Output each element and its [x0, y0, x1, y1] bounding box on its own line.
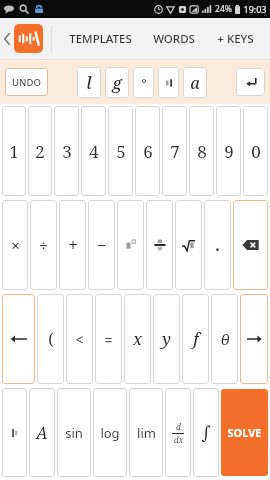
staticText: A	[36, 422, 48, 444]
button[interactable]: log	[93, 388, 127, 477]
staticText: dx	[174, 434, 183, 445]
button[interactable]: Power	[117, 200, 144, 290]
staticText: 19:03	[243, 3, 267, 15]
staticText: 0	[251, 140, 261, 163]
button[interactable]: l	[77, 67, 101, 98]
button[interactable]: 4	[81, 106, 106, 196]
button[interactable]: −	[88, 200, 115, 290]
button[interactable]: .	[204, 200, 231, 290]
button[interactable]: a	[183, 67, 207, 98]
button[interactable]: =	[95, 294, 122, 384]
staticText: −	[97, 235, 106, 255]
staticText: y	[162, 328, 171, 350]
staticText: .	[215, 234, 220, 256]
button[interactable]: x	[124, 294, 151, 384]
button[interactable]: 9	[216, 106, 241, 196]
button[interactable]: SOLVE	[221, 389, 268, 476]
staticText: log	[100, 424, 120, 442]
button[interactable]: + KEYS	[212, 20, 259, 58]
button[interactable]: 6	[135, 106, 160, 196]
staticText: ∫	[201, 422, 211, 443]
button[interactable]: 5	[108, 106, 133, 196]
button[interactable]: 8	[189, 106, 214, 196]
staticText: (	[48, 328, 54, 350]
staticText: +	[68, 234, 78, 256]
staticText: 7	[170, 140, 180, 163]
staticText: θ	[220, 329, 230, 349]
button[interactable]: 7	[162, 106, 187, 196]
staticText: ×	[11, 235, 20, 255]
button[interactable]: lim	[129, 388, 163, 477]
staticText: 3	[62, 140, 72, 163]
staticText: a	[190, 72, 200, 94]
button[interactable]: Back	[0, 18, 46, 59]
staticText: 4	[89, 140, 99, 163]
staticText: 9	[224, 140, 234, 163]
staticText: sin	[65, 424, 83, 442]
button[interactable]: 0	[243, 106, 268, 196]
button[interactable]: Integral	[193, 388, 219, 477]
button[interactable]: Enter	[236, 68, 265, 96]
staticText: 2	[35, 140, 45, 163]
button[interactable]: °	[133, 67, 154, 98]
button[interactable]: f	[182, 294, 209, 384]
staticText: l	[86, 71, 92, 94]
staticText: TEMPLATES	[69, 31, 132, 47]
staticText: =	[104, 330, 113, 349]
button[interactable]: sin	[57, 388, 91, 477]
button[interactable]: TEMPLATES	[64, 20, 137, 58]
button[interactable]: Placeholder	[158, 67, 179, 98]
button[interactable]: ÷	[30, 200, 57, 290]
button[interactable]: 2	[28, 106, 52, 196]
staticText: 8	[197, 140, 207, 163]
staticText: x	[133, 328, 142, 350]
staticText: d	[176, 421, 181, 433]
staticText: 1	[9, 140, 19, 163]
button[interactable]: g	[105, 67, 129, 98]
button[interactable]: A	[29, 388, 55, 477]
staticText: SOLVE	[227, 425, 262, 440]
button[interactable]: +	[59, 200, 86, 290]
button[interactable]: Fraction	[146, 200, 173, 290]
button[interactable]: Backspace	[233, 200, 268, 290]
button[interactable]: 1	[2, 106, 26, 196]
staticText: lim	[137, 424, 156, 442]
button[interactable]: θ	[211, 294, 238, 384]
staticText: g	[112, 71, 122, 94]
staticText: + KEYS	[217, 31, 254, 47]
button[interactable]: <	[66, 294, 93, 384]
button[interactable]: Move left	[2, 294, 35, 384]
staticText: 6	[143, 140, 153, 163]
button[interactable]: Move right	[240, 294, 268, 384]
button[interactable]: WORDS	[148, 20, 200, 58]
button[interactable]: Square root	[175, 200, 202, 290]
button[interactable]: Absolute value	[2, 388, 27, 477]
staticText: f	[193, 328, 199, 350]
staticText: <	[75, 330, 84, 349]
button[interactable]: y	[153, 294, 180, 384]
button[interactable]: 3	[54, 106, 79, 196]
button[interactable]: (	[37, 294, 64, 384]
staticText: ÷	[39, 235, 48, 255]
staticText: °	[141, 74, 147, 92]
button[interactable]: Derivative	[165, 388, 191, 477]
staticText: WORDS	[153, 31, 195, 47]
staticText: UNDO	[12, 76, 41, 89]
staticText: 24%	[215, 3, 232, 15]
button[interactable]: UNDO	[5, 68, 48, 96]
button[interactable]: ×	[2, 200, 28, 290]
staticText: 5	[116, 140, 126, 163]
